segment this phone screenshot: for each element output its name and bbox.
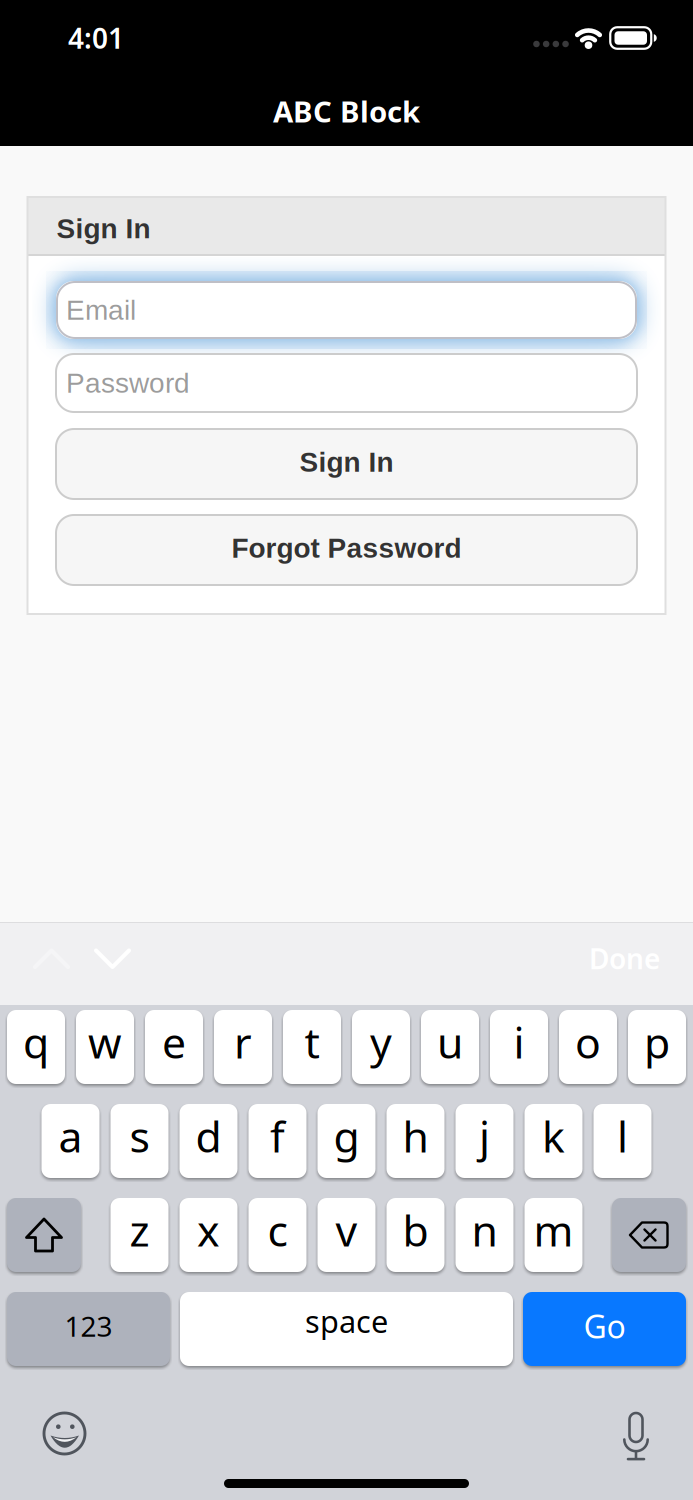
staticText: c <box>267 1202 287 1258</box>
button[interactable]: q <box>7 1010 65 1084</box>
button[interactable]: Email <box>56 281 637 339</box>
button[interactable]: Forgot Password <box>56 515 637 585</box>
button[interactable]: n <box>455 1198 513 1272</box>
button[interactable]: g <box>317 1104 375 1178</box>
staticText: y <box>370 1014 392 1070</box>
staticText: a <box>58 1108 82 1164</box>
button[interactable]: Done <box>589 945 693 982</box>
button[interactable]: Shift <box>7 1198 81 1272</box>
staticText: space <box>305 1301 388 1341</box>
staticText: w <box>88 1014 122 1070</box>
staticText: ABC Block <box>273 91 420 130</box>
staticText: b <box>402 1202 428 1258</box>
button[interactable]: y <box>352 1010 410 1084</box>
staticText: o <box>575 1014 601 1070</box>
button[interactable]: o <box>559 1010 617 1084</box>
staticText: d <box>195 1108 221 1164</box>
button[interactable]: a <box>41 1104 99 1178</box>
staticText: u <box>437 1014 463 1070</box>
button[interactable]: h <box>386 1104 444 1178</box>
button[interactable]: w <box>76 1010 134 1084</box>
button[interactable]: p <box>628 1010 686 1084</box>
staticText: l <box>617 1108 628 1164</box>
staticText: n <box>471 1202 497 1258</box>
button[interactable]: 123 <box>7 1292 170 1366</box>
button[interactable]: Dictate <box>623 1412 649 1454</box>
staticText: Password <box>66 367 190 399</box>
staticText: Email <box>66 294 136 326</box>
staticText: q <box>23 1014 49 1070</box>
staticText: j <box>479 1108 490 1164</box>
staticText: r <box>234 1014 252 1070</box>
button[interactable]: m <box>524 1198 582 1272</box>
staticText: i <box>513 1014 524 1070</box>
staticText: f <box>270 1108 285 1164</box>
button[interactable]: b <box>386 1198 444 1272</box>
button[interactable]: s <box>110 1104 168 1178</box>
button[interactable]: Sign In <box>56 429 637 499</box>
staticText: Sign In <box>299 446 393 478</box>
button[interactable]: Next field <box>70 933 131 994</box>
staticText: m <box>533 1202 573 1258</box>
staticText: Go <box>583 1305 625 1347</box>
button[interactable]: c <box>248 1198 306 1272</box>
staticText: v <box>335 1202 357 1258</box>
staticText: k <box>542 1108 565 1164</box>
button[interactable]: v <box>317 1198 375 1272</box>
button[interactable]: Password <box>56 354 637 412</box>
button[interactable]: Go <box>523 1292 686 1366</box>
button[interactable]: t <box>283 1010 341 1084</box>
button[interactable]: j <box>455 1104 513 1178</box>
staticText: g <box>333 1108 359 1164</box>
button[interactable]: x <box>179 1198 237 1272</box>
button[interactable]: Delete <box>612 1198 686 1272</box>
button[interactable]: r <box>214 1010 272 1084</box>
button[interactable]: z <box>110 1198 168 1272</box>
staticText: Forgot Password <box>231 532 461 564</box>
staticText: h <box>402 1108 428 1164</box>
staticText: 4:01 <box>68 19 124 57</box>
button[interactable]: k <box>524 1104 582 1178</box>
button[interactable]: f <box>248 1104 306 1178</box>
staticText: e <box>162 1014 186 1070</box>
button[interactable]: d <box>179 1104 237 1178</box>
button[interactable]: e <box>145 1010 203 1084</box>
button[interactable]: u <box>421 1010 479 1084</box>
staticText: t <box>304 1014 319 1070</box>
button[interactable]: i <box>490 1010 548 1084</box>
staticText: z <box>129 1202 149 1258</box>
button[interactable]: l <box>593 1104 651 1178</box>
staticText: 123 <box>64 1307 112 1345</box>
staticText: p <box>644 1014 670 1070</box>
staticText: Done <box>589 940 660 977</box>
staticText: x <box>197 1202 220 1258</box>
staticText: Sign In <box>56 213 150 244</box>
staticText: s <box>129 1108 149 1164</box>
button[interactable]: space <box>180 1292 513 1366</box>
button[interactable]: Emoji <box>43 1412 86 1455</box>
